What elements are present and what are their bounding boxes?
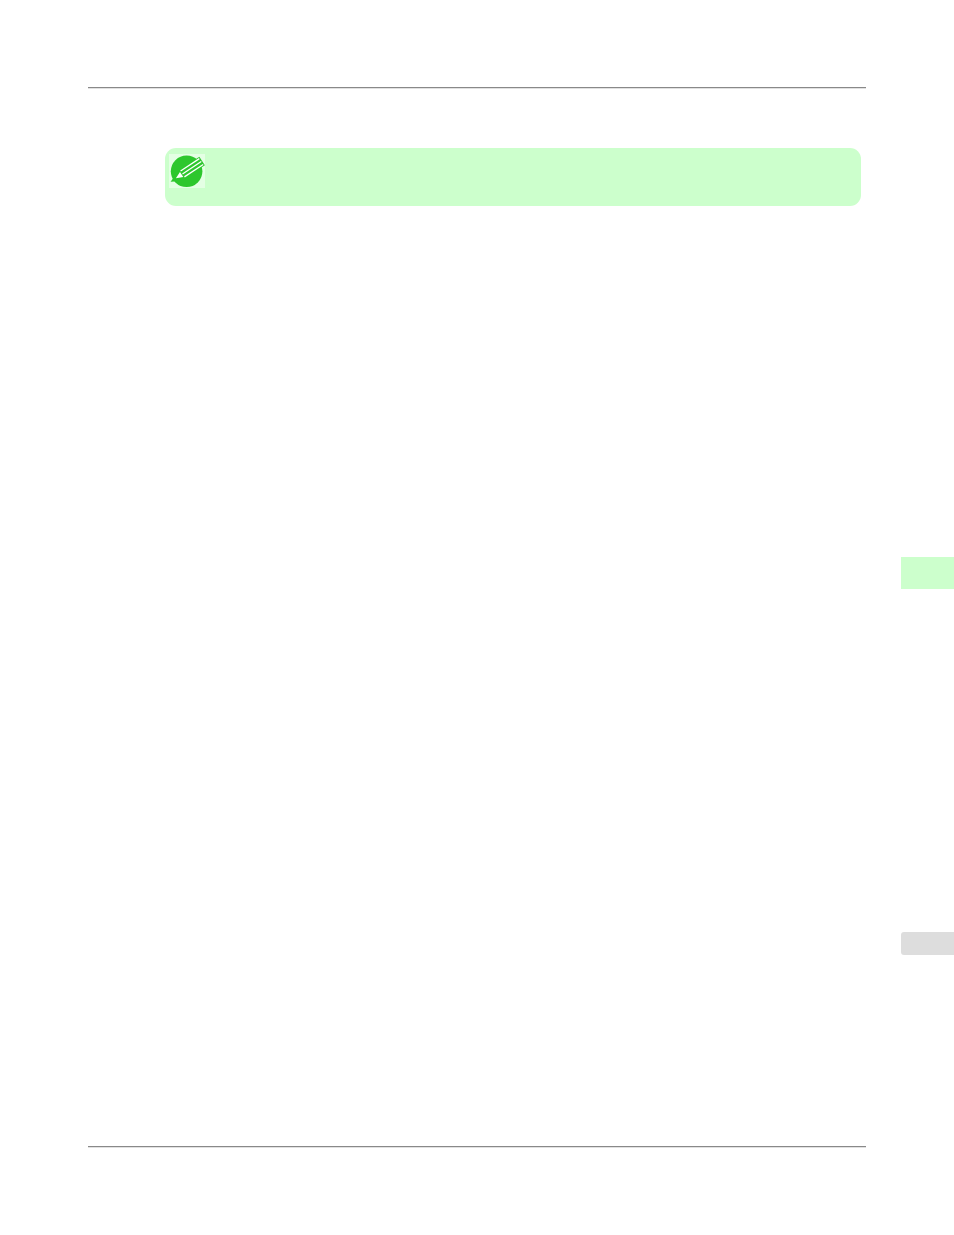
button[interactable]: Note: [165, 148, 861, 206]
